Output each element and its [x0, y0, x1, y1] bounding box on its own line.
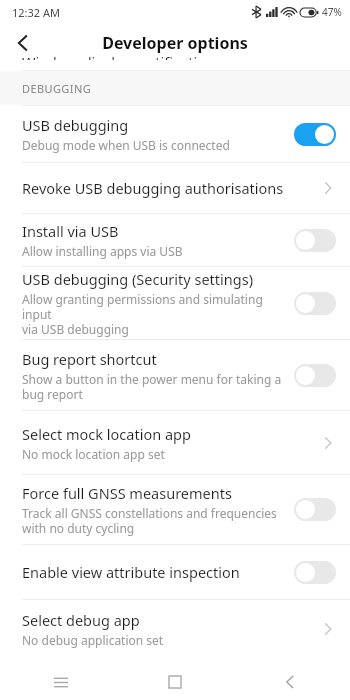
- staticText: No debug application set: [22, 632, 164, 648]
- button[interactable]: Install via USB: [0, 214, 350, 266]
- staticText: Show a button in the power menu for taki…: [22, 371, 282, 402]
- staticText: No mock location app set: [22, 446, 165, 462]
- button[interactable]: Select debug app: [0, 600, 350, 658]
- staticText: DEBUGGING: [22, 81, 92, 96]
- button[interactable]: Back: [267, 664, 311, 700]
- button[interactable]: Toggle off: [294, 364, 336, 387]
- staticText: Allow granting permissions and simulatin…: [22, 291, 286, 337]
- staticText: Allow installing apps via USB: [22, 243, 183, 259]
- staticText: Select mock location app: [22, 424, 191, 444]
- staticText: Wireless display certification: [22, 52, 215, 60]
- button[interactable]: Toggle off: [294, 561, 336, 584]
- staticText: 47%: [322, 5, 342, 19]
- button[interactable]: Back: [0, 24, 44, 62]
- button[interactable]: Recents: [39, 664, 83, 700]
- button[interactable]: Toggle off: [294, 292, 336, 315]
- staticText: Revoke USB debugging authorisations: [22, 178, 284, 198]
- staticText: Select debug app: [22, 610, 140, 630]
- staticText: 12:32 AM: [12, 5, 60, 20]
- button[interactable]: Bug report shortcut: [0, 340, 350, 410]
- staticText: Debug mode when USB is connected: [22, 137, 230, 153]
- button[interactable]: Toggle off: [294, 229, 336, 252]
- button[interactable]: USB debugging (Security settings): [0, 267, 350, 339]
- button[interactable]: Enable view attribute inspection: [0, 545, 350, 599]
- button[interactable]: Home: [153, 664, 197, 700]
- button[interactable]: Force full GNSS measurements: [0, 475, 350, 544]
- button[interactable]: Revoke USB debugging authorisations: [0, 163, 350, 213]
- staticText: Enable view attribute inspection: [22, 562, 240, 582]
- button[interactable]: USB debugging: [0, 106, 350, 162]
- staticText: Install via USB: [22, 221, 119, 241]
- staticText: Developer options: [102, 32, 248, 54]
- staticText: USB debugging (Security settings): [22, 269, 253, 289]
- button[interactable]: Select mock location app: [0, 411, 350, 474]
- button[interactable]: Toggle off: [294, 498, 336, 521]
- button[interactable]: Toggle on: [294, 123, 336, 146]
- staticText: Bug report shortcut: [22, 349, 157, 369]
- staticText: Track all GNSS constellations and freque…: [22, 505, 277, 536]
- staticText: Force full GNSS measurements: [22, 483, 232, 503]
- staticText: USB debugging: [22, 115, 129, 135]
